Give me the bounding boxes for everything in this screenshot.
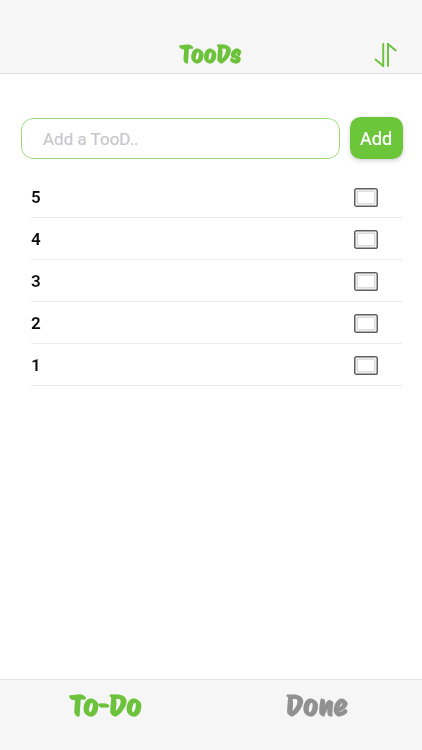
button[interactable]: 4 [0,218,422,260]
button[interactable]: 2 [0,302,422,344]
button[interactable]: Add [350,117,403,159]
button[interactable]: Add a TooD.. [21,118,340,159]
staticText: Done [286,688,348,723]
button[interactable]: 5 [0,176,422,218]
button[interactable]: Done [211,679,422,750]
button[interactable]: 1 [0,344,422,386]
staticText: 2 [31,313,41,333]
staticText: Add a TooD.. [43,129,139,149]
staticText: 4 [31,229,41,249]
button[interactable]: To-Do [0,679,211,750]
staticText: Add [360,128,393,149]
staticText: 5 [31,187,41,207]
staticText: TooDs [180,40,242,69]
button[interactable]: 3 [0,260,422,302]
staticText: 3 [31,271,41,291]
staticText: To-Do [70,688,142,723]
staticText: 1 [31,355,41,375]
button[interactable]: Sort [373,42,398,67]
